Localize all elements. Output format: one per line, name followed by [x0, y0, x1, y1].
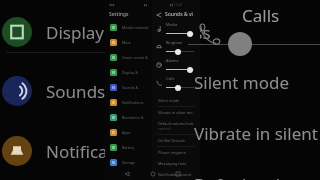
button[interactable]: Sounds & vibration — [0, 71, 320, 111]
staticText: Sounds & vibration — [46, 80, 198, 103]
staticText: Silent mode — [158, 98, 180, 103]
button[interactable]: Home — [149, 170, 157, 178]
button[interactable]: Back — [155, 11, 163, 19]
button[interactable]: Back — [123, 170, 131, 178]
button[interactable]: Display & brightness — [0, 12, 320, 52]
staticText: Notifications — [122, 100, 144, 105]
button[interactable]: Battery — [105, 140, 152, 155]
button[interactable]: Home screen & wallpa — [105, 50, 152, 65]
button[interactable]: Notifications — [0, 131, 320, 171]
button[interactable]: Phone ringtone — [152, 147, 200, 158]
staticText: Notifications — [46, 140, 148, 163]
staticText: ▮▮ — [144, 3, 148, 6]
staticText: Sounds & vi — [165, 11, 193, 18]
button[interactable]: Apps — [105, 125, 152, 140]
staticText: control — [158, 126, 171, 131]
staticText: Settings — [109, 11, 129, 18]
button[interactable]: Notifications — [105, 95, 152, 110]
staticText: Biometrics & password — [122, 115, 152, 120]
button[interactable]: Silent mode — [188, 71, 320, 94]
button[interactable]: Default volume butt — [152, 118, 200, 134]
staticText: More connections — [122, 40, 152, 45]
button[interactable]: Sounds & vibration — [105, 80, 152, 95]
button[interactable]: Alarms — [152, 56, 200, 74]
button[interactable]: Vibrate in silent mo — [188, 122, 320, 145]
staticText: Display & brightness — [122, 70, 152, 75]
staticText: Storage — [122, 160, 136, 165]
staticText: Vibrate in silent mo — [158, 110, 193, 115]
button[interactable]: Do Not Disturb — [152, 135, 200, 146]
staticText: Home screen & wallpa — [122, 55, 152, 60]
staticText: Alarms — [166, 58, 179, 63]
staticText: Media — [166, 22, 178, 27]
staticText: Notification sound — [158, 172, 191, 177]
staticText: Phone ringtone — [158, 150, 186, 155]
button[interactable]: More connections — [105, 35, 152, 50]
staticText: Ringtone — [166, 40, 183, 45]
button[interactable]: Biometrics & password — [105, 110, 152, 125]
staticText: ▮▮ 10:44 — [170, 3, 182, 7]
button[interactable]: Media — [152, 20, 200, 38]
button[interactable]: Mobile network — [105, 20, 152, 35]
button[interactable]: Default volume butt — [188, 173, 320, 180]
staticText: Default volume butt — [158, 121, 194, 126]
button[interactable]: Calls — [152, 74, 200, 92]
staticText: Calls — [166, 76, 175, 81]
staticText: Calls — [242, 4, 280, 27]
button[interactable]: Messaging tone — [152, 158, 200, 169]
button[interactable]: Silent mode — [152, 95, 200, 106]
button[interactable]: Vibrate in silent mo — [152, 107, 200, 118]
staticText: Mobile network — [122, 25, 149, 30]
button[interactable]: Storage — [105, 155, 152, 170]
staticText: Sounds & vibration — [122, 85, 152, 90]
button[interactable]: Calls — [188, 4, 320, 57]
button[interactable]: Recents — [174, 170, 182, 178]
button[interactable]: Notification sound — [152, 169, 200, 180]
staticText: Do Not Disturb — [158, 138, 185, 143]
staticText: Apps — [122, 130, 131, 135]
button[interactable]: Display & brightness — [105, 65, 152, 80]
staticText: Messaging tone — [158, 161, 187, 166]
button[interactable]: Ringtone — [152, 38, 200, 56]
staticText: ▼▮▮ — [109, 3, 115, 6]
staticText: Display & brightness — [46, 21, 211, 44]
staticText: Battery — [122, 145, 135, 150]
